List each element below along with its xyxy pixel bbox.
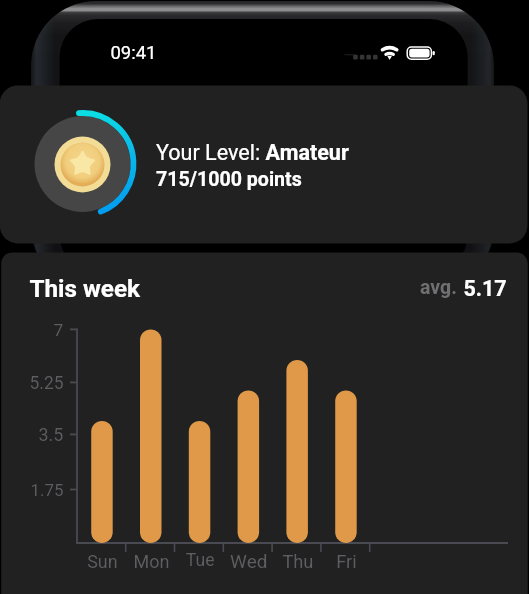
other: Weekly activity dashboard [0,0,529,594]
